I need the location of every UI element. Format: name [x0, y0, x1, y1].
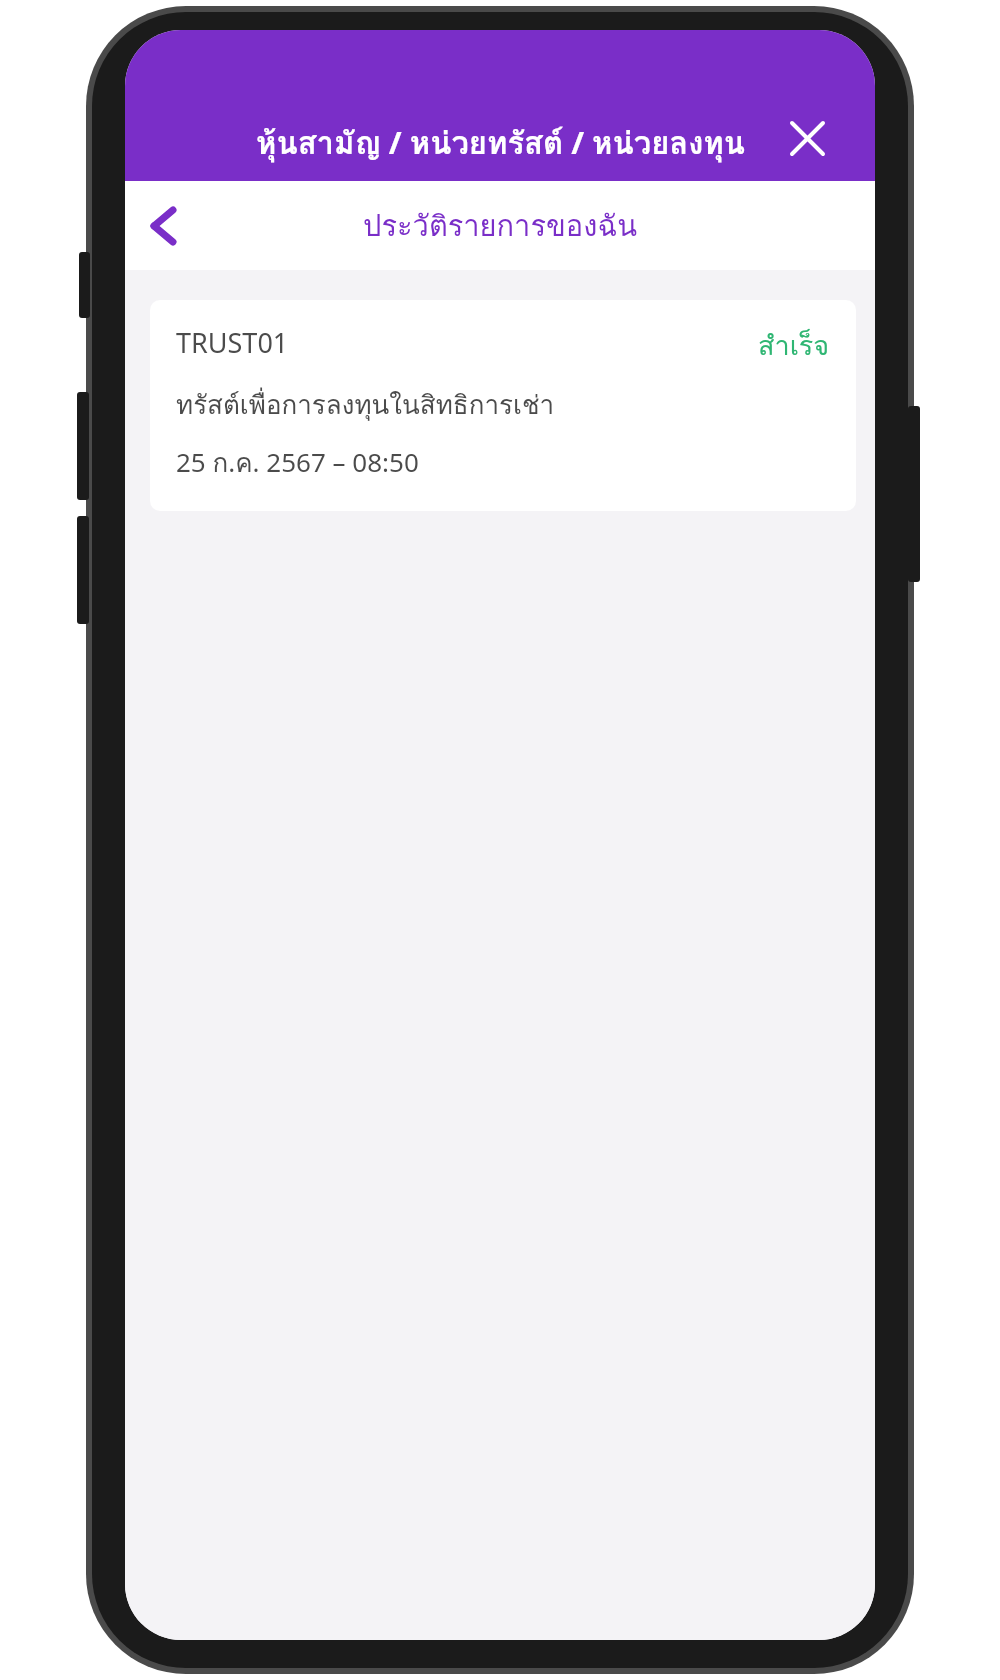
staticText: ทรัสต์เพื่อการลงทุนในสิทธิการเช่า	[176, 384, 555, 425]
staticText: ประวัติรายการของฉัน	[363, 203, 637, 249]
staticText: 25 ก.ค. 2567 – 08:50	[176, 442, 419, 483]
button[interactable]: Back	[131, 194, 195, 258]
staticText: TRUST01	[176, 324, 758, 361]
button[interactable]: Close	[779, 110, 835, 166]
staticText: สำเร็จ	[758, 324, 830, 367]
staticText: หุ้นสามัญ / หน่วยทรัสต์ / หน่วยลงทุน	[256, 118, 745, 167]
button[interactable]: TRUST01	[150, 300, 856, 511]
